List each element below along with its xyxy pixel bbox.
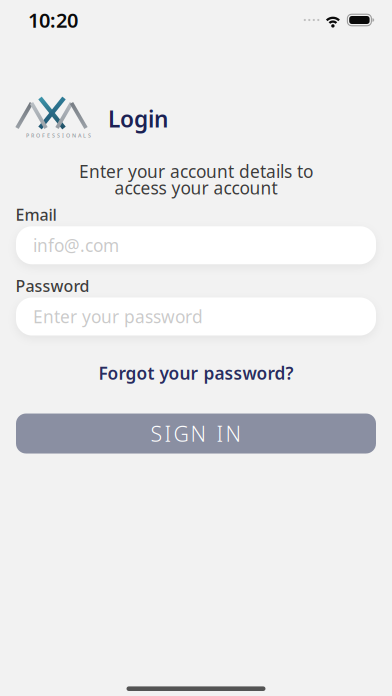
staticText: Enter your password [33,305,203,328]
staticText: Enter your password [33,301,255,331]
textField[interactable]: info@.com [33,230,376,260]
staticText: Password [15,275,89,296]
staticText: info@.com [33,230,147,260]
staticText: Login [108,104,168,134]
staticText: Email [15,204,56,225]
staticText: Forgot your password? [98,361,293,384]
staticText: S I G N I N [150,419,241,448]
staticText: 10:20 [28,7,78,33]
textField[interactable]: Enter your password [33,301,376,331]
button[interactable]: S I G N I N [16,413,376,453]
staticText: info@.com [33,234,119,257]
button[interactable]: Forgot your password? [98,361,293,384]
staticText: Enter your account details to [79,160,313,183]
staticText: P R O F E S S I O N A L S [26,132,91,139]
staticText: access your account [114,176,277,199]
